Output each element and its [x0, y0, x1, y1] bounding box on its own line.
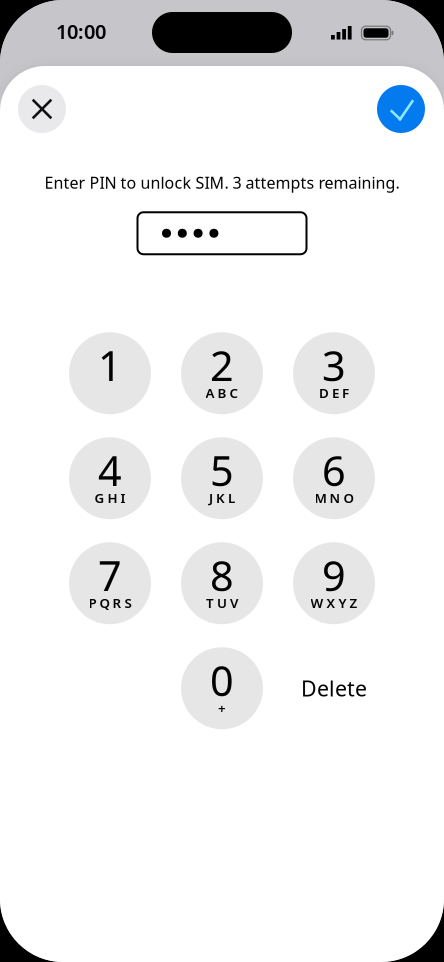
staticText: G H I [94, 489, 125, 507]
staticText: 7 [98, 548, 122, 603]
staticText: P Q R S [88, 594, 131, 612]
staticText: 3 [322, 338, 346, 393]
button[interactable]: 8 [181, 542, 263, 624]
staticText: 8 [210, 548, 234, 603]
staticText: Enter PIN to unlock SIM. 3 attempts rema… [44, 172, 399, 193]
staticText: 4 [98, 443, 122, 498]
staticText: Delete [301, 674, 367, 702]
button[interactable]: 4 [69, 437, 151, 519]
staticText: D E F [319, 384, 349, 402]
staticText: 2 [210, 338, 234, 393]
button[interactable]: Unlock [377, 85, 425, 133]
staticText: 0 [210, 653, 234, 708]
staticText: J K L [209, 489, 235, 507]
staticText: + [218, 699, 226, 717]
staticText: 5 [210, 443, 234, 498]
staticText: 1 [98, 338, 122, 393]
staticText: W X Y Z [310, 594, 357, 612]
staticText: A B C [205, 384, 238, 402]
button[interactable]: 5 [181, 437, 263, 519]
button[interactable]: 0 [181, 647, 263, 729]
button[interactable]: 9 [293, 542, 375, 624]
staticText: T U V [206, 594, 238, 612]
staticText: 10:00 [56, 18, 106, 45]
staticText: 6 [322, 443, 346, 498]
button[interactable]: 3 [293, 332, 375, 414]
button[interactable]: 1 [69, 332, 151, 414]
button[interactable]: Delete [293, 647, 375, 729]
staticText: M N O [314, 489, 353, 507]
button[interactable]: Close [18, 85, 66, 133]
button[interactable]: 6 [293, 437, 375, 519]
staticText: 9 [322, 548, 346, 603]
button[interactable]: 2 [181, 332, 263, 414]
button[interactable]: 7 [69, 542, 151, 624]
